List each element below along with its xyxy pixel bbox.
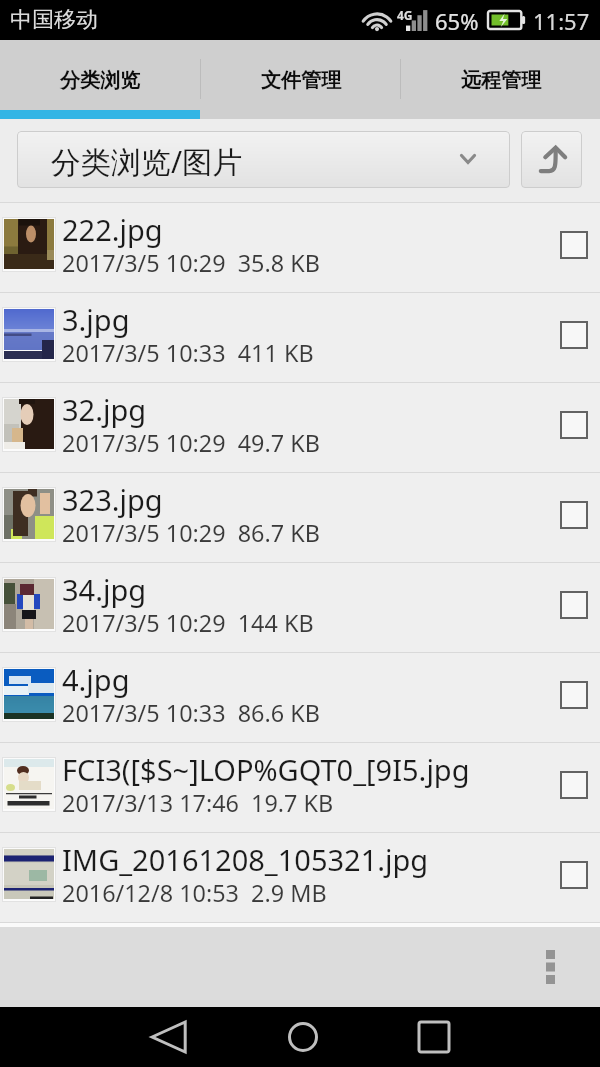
button[interactable]: Select 4.jpg bbox=[533, 653, 600, 742]
staticText: 4G bbox=[397, 7, 413, 23]
staticText: 2017/3/5 10:29 35.8 KB bbox=[62, 247, 320, 279]
button[interactable]: 分类浏览/图片 bbox=[17, 131, 510, 188]
staticText: 远程管理 bbox=[461, 68, 541, 93]
staticText: 2017/3/13 17:46 19.7 KB bbox=[62, 787, 334, 819]
button[interactable]: 分类浏览 bbox=[0, 40, 200, 110]
staticText: 文件管理 bbox=[261, 68, 341, 93]
staticText: IMG_20161208_105321.jpg bbox=[62, 840, 429, 879]
button[interactable]: Home bbox=[236, 1007, 369, 1067]
staticText: 分类浏览 bbox=[60, 68, 140, 93]
staticText: 分类浏览/图片 bbox=[51, 141, 243, 182]
staticText: 2016/12/8 10:53 2.9 MB bbox=[62, 877, 327, 909]
button[interactable]: 文件管理 bbox=[201, 40, 400, 110]
staticText: 2017/3/5 10:33 411 KB bbox=[62, 337, 314, 369]
button[interactable]: IMG_20161208_105321.jpg bbox=[0, 833, 600, 922]
staticText: 3.jpg bbox=[62, 300, 130, 339]
staticText: 4.jpg bbox=[62, 660, 130, 699]
staticText: 2017/3/5 10:33 86.6 KB bbox=[62, 697, 320, 729]
button[interactable]: Recent apps bbox=[367, 1007, 500, 1067]
button[interactable]: 323.jpg bbox=[0, 473, 600, 562]
button[interactable]: FCI3([$S~]LOP%GQT0_[9I5.jpg bbox=[0, 743, 600, 832]
staticText: 2017/3/5 10:29 86.7 KB bbox=[62, 517, 320, 549]
staticText: 65% bbox=[435, 6, 479, 36]
button[interactable]: More options bbox=[509, 927, 591, 1007]
staticText: 2017/3/5 10:29 49.7 KB bbox=[62, 427, 320, 459]
button[interactable]: Select FCI3([$S~]LOP%GQT0_[9I5.jpg bbox=[533, 743, 600, 832]
staticText: 11:57 bbox=[533, 6, 590, 36]
staticText: 2017/3/5 10:29 144 KB bbox=[62, 607, 314, 639]
staticText: 323.jpg bbox=[62, 480, 163, 519]
button[interactable]: Select 34.jpg bbox=[533, 563, 600, 652]
button[interactable]: 3.jpg bbox=[0, 293, 600, 382]
button[interactable]: Select 222.jpg bbox=[533, 203, 600, 292]
button[interactable]: 222.jpg bbox=[0, 203, 600, 292]
staticText: 222.jpg bbox=[62, 210, 163, 249]
staticText: 34.jpg bbox=[62, 570, 147, 609]
button[interactable]: 32.jpg bbox=[0, 383, 600, 472]
button[interactable]: 远程管理 bbox=[401, 40, 600, 110]
button[interactable]: Back bbox=[102, 1007, 235, 1067]
button[interactable]: Select 3.jpg bbox=[533, 293, 600, 382]
button[interactable]: 4.jpg bbox=[0, 653, 600, 742]
button[interactable]: Up one level bbox=[521, 131, 582, 188]
button[interactable]: Select 32.jpg bbox=[533, 383, 600, 472]
staticText: 32.jpg bbox=[62, 390, 147, 429]
button[interactable]: 34.jpg bbox=[0, 563, 600, 652]
staticText: 中国移动 bbox=[10, 6, 98, 34]
staticText: FCI3([$S~]LOP%GQT0_[9I5.jpg bbox=[62, 750, 470, 789]
button[interactable]: Select IMG_20161208_105321.jpg bbox=[533, 833, 600, 922]
button[interactable]: Select 323.jpg bbox=[533, 473, 600, 562]
